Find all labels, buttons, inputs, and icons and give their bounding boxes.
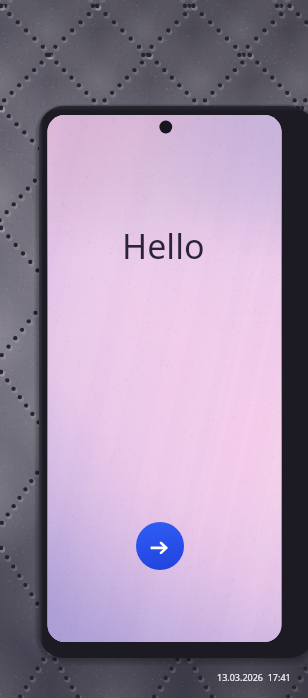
staticText: Hello [122, 223, 205, 269]
staticText: 13.03.2026 17:41 [217, 671, 291, 683]
button[interactable]: Next [136, 522, 184, 570]
